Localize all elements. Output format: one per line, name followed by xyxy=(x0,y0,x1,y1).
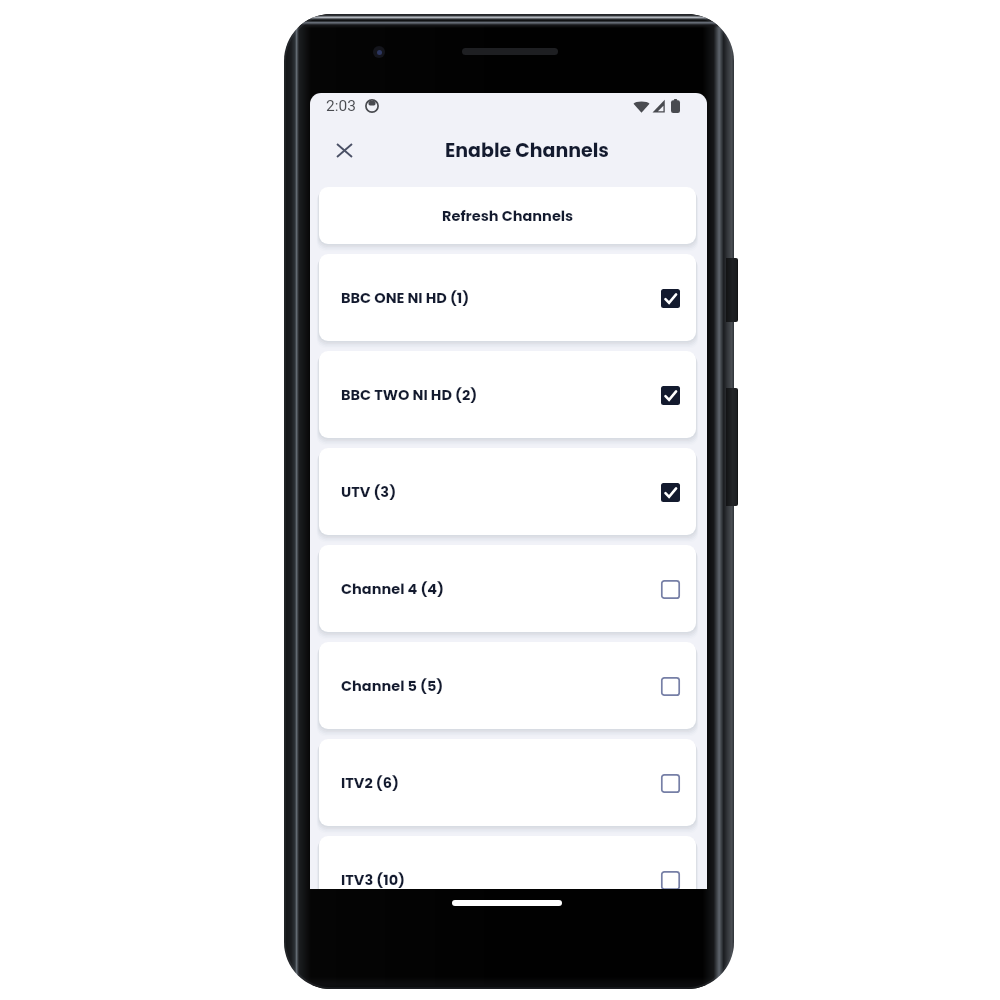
button[interactable]: ITV2 (6) xyxy=(319,739,696,826)
button[interactable]: UTV (3) xyxy=(319,448,696,535)
staticText: Channel 5 (5) xyxy=(341,676,660,696)
button[interactable]: Channel 5 (5) xyxy=(319,642,696,729)
staticText: Enable Channels xyxy=(445,137,609,164)
staticText: BBC TWO NI HD (2) xyxy=(341,385,660,405)
staticText: BBC ONE NI HD (1) xyxy=(341,288,660,308)
button[interactable]: Channel enabled xyxy=(660,288,680,308)
staticText: ITV3 (10) xyxy=(341,870,660,889)
button[interactable]: Close xyxy=(321,127,367,173)
staticText: 2:03 xyxy=(326,97,356,115)
staticText: UTV (3) xyxy=(341,482,660,502)
button[interactable]: Channel disabled xyxy=(660,773,680,793)
button[interactable]: Refresh Channels xyxy=(319,187,696,244)
staticText: ITV2 (6) xyxy=(341,773,660,793)
button[interactable]: Channel enabled xyxy=(660,385,680,405)
button[interactable]: Channel disabled xyxy=(660,676,680,696)
button[interactable]: Channel 4 (4) xyxy=(319,545,696,632)
button[interactable]: Channel disabled xyxy=(660,870,680,889)
staticText: Refresh Channels xyxy=(442,206,574,226)
button[interactable]: BBC TWO NI HD (2) xyxy=(319,351,696,438)
button[interactable]: ITV3 (10) xyxy=(319,836,696,889)
staticText: Channel 4 (4) xyxy=(341,579,660,599)
button[interactable]: Channel disabled xyxy=(660,579,680,599)
button[interactable]: BBC ONE NI HD (1) xyxy=(319,254,696,341)
button[interactable]: Channel enabled xyxy=(660,482,680,502)
